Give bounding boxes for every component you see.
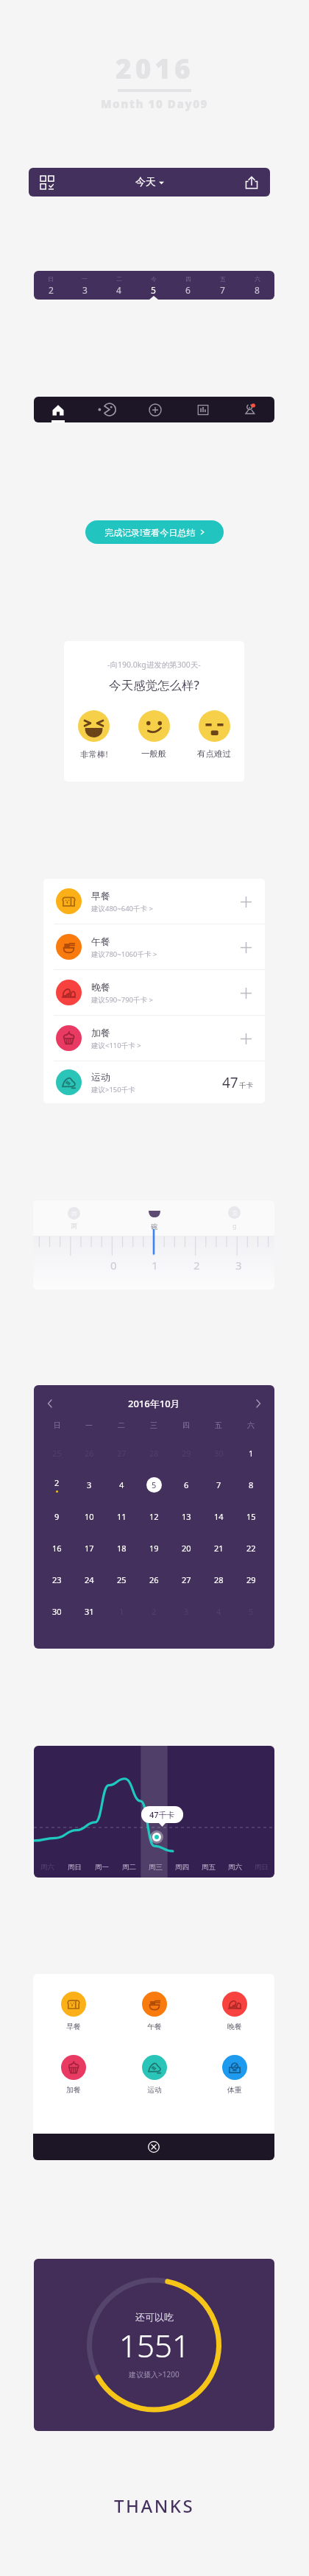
staticText: 31 <box>85 1606 94 1617</box>
button[interactable]: 今天 <box>65 168 233 197</box>
staticText: 25 <box>117 1574 127 1585</box>
button[interactable]: 31 <box>73 1596 105 1627</box>
staticText: 运动 <box>91 1071 110 1083</box>
button[interactable]: 碗 <box>114 1206 194 1231</box>
button[interactable]: 日 <box>34 271 68 300</box>
staticText: 21 <box>214 1543 224 1554</box>
button[interactable]: 11 <box>105 1501 138 1532</box>
button[interactable]: 2 <box>41 1469 73 1501</box>
button[interactable]: 6 <box>170 1469 202 1501</box>
button[interactable]: 一般般 <box>134 709 174 760</box>
staticText: 14 <box>214 1511 224 1522</box>
button[interactable]: Statistics <box>179 397 227 422</box>
button[interactable]: 30 <box>41 1596 73 1627</box>
button[interactable]: 晚餐 <box>194 1992 274 2031</box>
button[interactable]: 完成记录!查看今日总结 <box>85 520 224 544</box>
button[interactable]: 9 <box>41 1501 73 1532</box>
staticText: 17 <box>85 1543 94 1554</box>
staticText: 2 <box>54 1477 60 1488</box>
button[interactable]: 12 <box>138 1501 170 1532</box>
button[interactable]: 23 <box>41 1564 73 1596</box>
button[interactable]: 20 <box>170 1532 202 1564</box>
button[interactable]: 午餐 <box>114 1992 194 2031</box>
button[interactable]: 加餐 <box>33 2055 114 2095</box>
button[interactable]: 16 <box>41 1532 73 1564</box>
button[interactable]: 今 <box>136 271 171 300</box>
button[interactable]: 18 <box>105 1532 138 1564</box>
button[interactable]: 早餐 <box>33 1992 114 2031</box>
staticText: 周六 <box>40 1863 54 1872</box>
button[interactable]: 四 <box>171 271 205 300</box>
button[interactable]: Next month <box>249 1395 267 1412</box>
staticText: 二 <box>118 1420 125 1430</box>
button[interactable]: Profile <box>227 397 274 422</box>
button[interactable]: 7 <box>202 1469 235 1501</box>
button[interactable]: 运动 <box>43 1061 265 1103</box>
button[interactable]: Add <box>131 397 179 422</box>
button[interactable]: Close <box>33 2134 274 2160</box>
button[interactable]: 29 <box>235 1564 267 1596</box>
staticText: 今天感觉怎么样? <box>109 676 199 693</box>
button[interactable]: 5 <box>138 1469 170 1501</box>
button[interactable]: 24 <box>73 1564 105 1596</box>
button[interactable]: 21 <box>202 1532 235 1564</box>
button[interactable]: Share <box>233 168 270 197</box>
staticText: -向190.0kg进发的第300天- <box>107 659 201 670</box>
button[interactable]: 早餐 <box>43 879 265 924</box>
button[interactable]: 4 <box>105 1469 138 1501</box>
button[interactable]: 1 <box>235 1437 267 1469</box>
button[interactable]: Home <box>34 397 82 422</box>
button[interactable]: Previous month <box>41 1395 59 1412</box>
button[interactable]: 19 <box>138 1532 170 1564</box>
button[interactable]: 六 <box>240 271 274 300</box>
button[interactable]: 25 <box>105 1564 138 1596</box>
button[interactable]: 午餐 <box>43 924 265 969</box>
button[interactable]: 加餐 <box>43 1016 265 1061</box>
button[interactable]: 五 <box>205 271 240 300</box>
button[interactable]: 14 <box>202 1501 235 1532</box>
staticText: 13 <box>182 1511 191 1522</box>
button[interactable]: 3 <box>73 1469 105 1501</box>
staticText: 1551 <box>119 2324 190 2366</box>
button[interactable]: 10 <box>73 1501 105 1532</box>
button[interactable]: 克 <box>194 1206 274 1230</box>
button[interactable]: 13 <box>170 1501 202 1532</box>
button[interactable]: 一 <box>68 271 102 300</box>
button[interactable]: Discover <box>82 397 131 422</box>
button[interactable]: 二 <box>102 271 136 300</box>
button[interactable]: 15 <box>235 1501 267 1532</box>
staticText: 完成记录!查看今日总结 <box>104 526 196 538</box>
button[interactable]: 运动 <box>114 2055 194 2095</box>
button[interactable]: 8 <box>235 1469 267 1501</box>
button[interactable]: 27 <box>170 1564 202 1596</box>
staticText: 2016 <box>116 49 194 86</box>
staticText: 还可以吃 <box>135 2311 174 2323</box>
staticText: 4 <box>119 1479 124 1490</box>
button[interactable]: Tasks <box>29 168 65 197</box>
button[interactable]: 体重 <box>194 2055 274 2095</box>
staticText: 有点难过 <box>197 749 231 759</box>
button[interactable]: 22 <box>235 1532 267 1564</box>
button[interactable]: 两 <box>33 1207 114 1230</box>
staticText: 碗 <box>151 1222 157 1231</box>
staticText: 4 <box>216 1606 221 1617</box>
button[interactable]: 28 <box>202 1564 235 1596</box>
button[interactable]: 有点难过 <box>193 709 235 760</box>
button[interactable]: 26 <box>138 1564 170 1596</box>
button[interactable]: 非常棒! <box>74 709 114 762</box>
button[interactable]: 晚餐 <box>43 970 265 1015</box>
staticText: 2 <box>152 1606 157 1617</box>
button[interactable]: 17 <box>73 1532 105 1564</box>
staticText: 周四 <box>175 1863 189 1872</box>
